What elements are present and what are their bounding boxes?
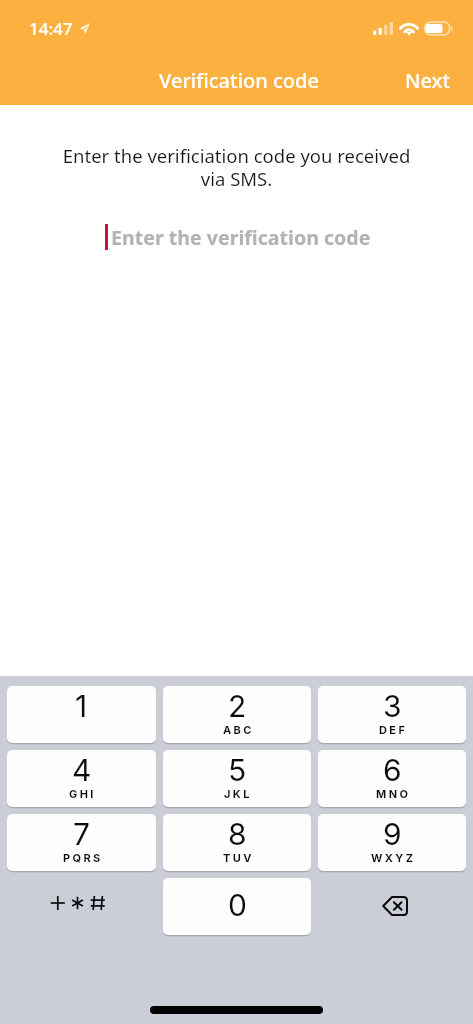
button[interactable]: 0 xyxy=(163,878,311,935)
staticText: 5 xyxy=(228,752,247,788)
button[interactable]: 3 xyxy=(318,686,466,743)
button[interactable]: 2 xyxy=(163,686,311,743)
staticText: 6 xyxy=(383,752,402,788)
staticText: 3 xyxy=(383,688,402,724)
staticText: Enter the verification code xyxy=(111,224,371,251)
button[interactable]: 4 xyxy=(7,750,156,807)
staticText: GHI xyxy=(69,787,96,800)
staticText: MNO xyxy=(376,787,411,800)
staticText: TUV xyxy=(223,851,254,864)
staticText: 9 xyxy=(383,816,402,852)
button[interactable]: 9 xyxy=(318,814,466,871)
staticText: DEF xyxy=(379,723,408,736)
staticText: JKL xyxy=(224,787,252,800)
staticText: 0 xyxy=(228,887,247,923)
staticText: 1 xyxy=(75,688,88,724)
button[interactable]: Backspace xyxy=(318,878,466,935)
staticText: 8 xyxy=(228,816,247,852)
staticText: 14:47 xyxy=(29,17,73,40)
staticText: 4 xyxy=(72,752,92,788)
staticText: WXYZ xyxy=(371,851,416,864)
button[interactable]: 8 xyxy=(163,814,311,871)
staticText: ABC xyxy=(223,723,254,736)
button[interactable]: 6 xyxy=(318,750,466,807)
staticText: 7 xyxy=(73,816,90,852)
staticText: Verification code xyxy=(159,67,319,94)
staticText: 2 xyxy=(228,688,247,724)
staticText: PQRS xyxy=(63,851,103,864)
button[interactable]: Symbols xyxy=(7,878,156,935)
staticText: Next xyxy=(405,67,451,94)
button[interactable]: 5 xyxy=(163,750,311,807)
staticText: Enter the verificiation code you receive… xyxy=(0,143,473,191)
button[interactable]: 7 xyxy=(7,814,156,871)
button[interactable]: Next xyxy=(383,57,473,104)
button[interactable]: 1 xyxy=(7,686,156,743)
